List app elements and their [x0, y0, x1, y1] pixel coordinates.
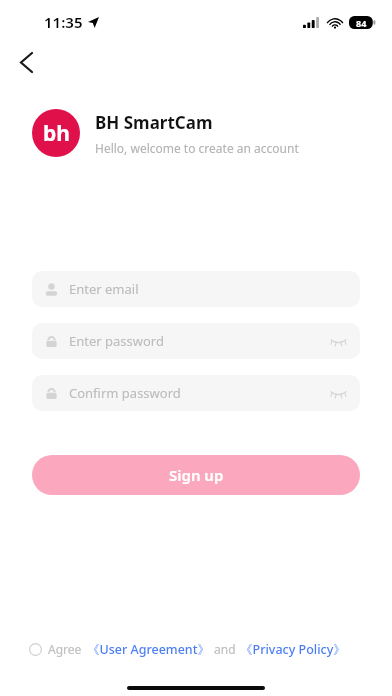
button[interactable]: Show password	[328, 383, 348, 403]
staticText: Enter password	[69, 332, 328, 350]
staticText: BH SmartCam	[95, 111, 213, 134]
staticText: Sign up	[169, 465, 224, 485]
staticText: Hello, welcome to create an account	[95, 140, 299, 156]
staticText: and	[214, 641, 236, 657]
button[interactable]: Confirm password	[32, 375, 360, 411]
button[interactable]: Enter password	[32, 323, 360, 359]
staticText: Agree	[48, 641, 82, 657]
button[interactable]: Back	[8, 44, 44, 80]
staticText: 84	[356, 17, 367, 29]
button[interactable]: Agree checkbox	[24, 638, 46, 660]
button[interactable]: Sign up	[32, 455, 360, 495]
button[interactable]: 《Privacy Policy》	[240, 641, 346, 658]
staticText: 《Privacy Policy》	[240, 641, 346, 658]
staticText: 11:35	[44, 12, 83, 32]
staticText: Confirm password	[69, 384, 328, 402]
button[interactable]: 《User Agreement》	[87, 641, 210, 658]
button[interactable]: Show password	[328, 331, 348, 351]
button[interactable]: Enter email	[32, 271, 360, 307]
staticText: bh	[43, 119, 70, 148]
staticText: 《User Agreement》	[87, 641, 210, 658]
staticText: Enter email	[69, 280, 348, 298]
